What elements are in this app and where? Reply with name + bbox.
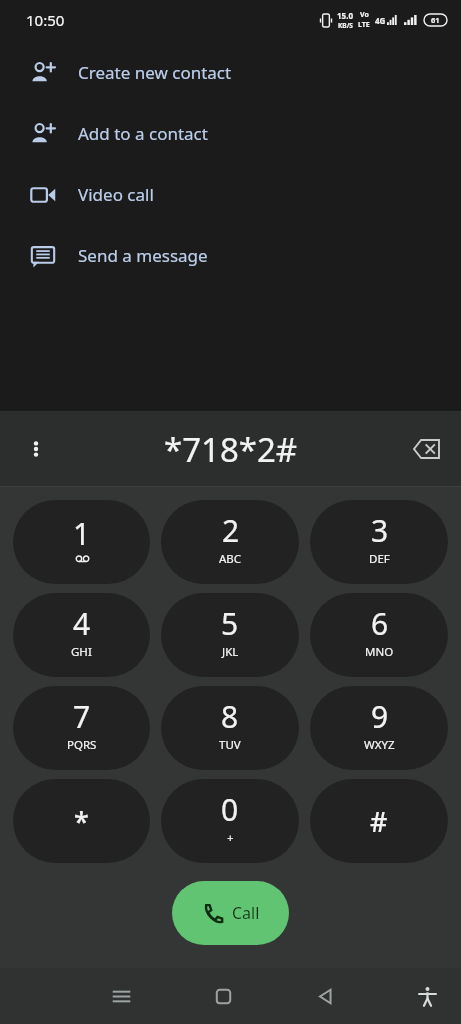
button[interactable]: # <box>310 779 448 863</box>
button[interactable]: Recent apps <box>97 972 145 1020</box>
button[interactable]: Backspace <box>403 426 449 472</box>
staticText: # <box>370 803 388 840</box>
staticText: 7 <box>73 696 91 737</box>
button[interactable]: Home <box>199 972 247 1020</box>
button[interactable]: 4 <box>13 593 150 677</box>
staticText: Call <box>232 902 260 924</box>
button[interactable]: 3 <box>310 500 448 584</box>
button[interactable]: Video call <box>0 164 461 225</box>
staticText: 4 <box>73 603 91 644</box>
button[interactable]: More options <box>13 426 59 472</box>
staticText: JKL <box>222 644 239 660</box>
staticText: WXYZ <box>364 737 395 753</box>
button[interactable]: * <box>13 779 150 863</box>
staticText: Add to a contact <box>78 122 208 145</box>
staticText: 6 <box>371 603 389 644</box>
staticText: * <box>74 803 89 840</box>
staticText: 3 <box>371 510 389 551</box>
staticText: 10:50 <box>26 10 65 30</box>
staticText: GHI <box>71 644 92 660</box>
staticText: 0 <box>221 789 239 830</box>
staticText: Video call <box>78 183 154 206</box>
button[interactable]: Back <box>301 972 349 1020</box>
button[interactable]: 2 <box>161 500 299 584</box>
staticText: ABC <box>219 551 242 567</box>
staticText: + <box>227 830 234 846</box>
staticText: LTE <box>358 20 370 30</box>
staticText: MNO <box>365 644 394 660</box>
button[interactable]: Call <box>172 881 289 945</box>
staticText: 9 <box>371 696 389 737</box>
staticText: TUV <box>219 737 241 753</box>
button[interactable]: Accessibility <box>403 972 451 1020</box>
button[interactable]: 7 <box>13 686 150 770</box>
staticText: KB/S <box>338 21 353 30</box>
button[interactable]: 8 <box>161 686 299 770</box>
staticText: 1 <box>73 513 91 554</box>
staticText: Create new contact <box>78 61 232 84</box>
staticText: 2 <box>222 510 240 551</box>
button[interactable]: Add to a contact <box>0 103 461 164</box>
staticText: Send a message <box>78 244 208 267</box>
button[interactable]: 9 <box>310 686 448 770</box>
button[interactable]: 1 <box>13 500 150 584</box>
staticText: 5 <box>221 603 239 644</box>
button[interactable]: 5 <box>161 593 299 677</box>
staticText: 61 <box>431 15 440 25</box>
staticText: Vo <box>360 10 369 20</box>
staticText: DEF <box>369 551 390 567</box>
button[interactable]: Send a message <box>0 225 461 286</box>
button[interactable]: Create new contact <box>0 42 461 103</box>
staticText: *718*2# <box>164 427 298 472</box>
staticText: 15.0 <box>337 10 353 21</box>
staticText: 4G <box>375 15 386 26</box>
staticText: PQRS <box>67 737 97 753</box>
staticText: 8 <box>221 696 239 737</box>
button[interactable]: 6 <box>310 593 448 677</box>
button[interactable]: 0 <box>161 779 299 863</box>
